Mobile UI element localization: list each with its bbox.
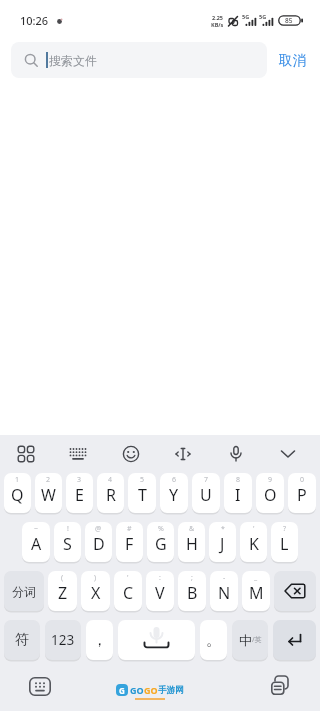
button[interactable]: 5 bbox=[128, 473, 156, 513]
staticText: ' bbox=[253, 524, 255, 534]
staticText: ) bbox=[94, 573, 97, 583]
button[interactable]: * bbox=[209, 522, 236, 562]
staticText: R bbox=[106, 484, 116, 506]
button[interactable] bbox=[274, 571, 316, 611]
staticText: C bbox=[123, 582, 134, 604]
staticText: ! bbox=[67, 524, 69, 534]
button[interactable]: 3 bbox=[66, 473, 93, 513]
staticText: 分词 bbox=[12, 584, 36, 599]
button[interactable] bbox=[277, 443, 299, 465]
button[interactable]: ) bbox=[81, 571, 110, 611]
button[interactable]: : bbox=[146, 571, 174, 611]
staticText: _ bbox=[254, 573, 258, 583]
staticText: KB/s bbox=[211, 21, 224, 28]
staticText: 4 bbox=[108, 475, 113, 485]
staticText: # bbox=[127, 524, 132, 534]
staticText: 1 bbox=[15, 475, 20, 485]
staticText: Z bbox=[58, 582, 68, 604]
button[interactable]: _ bbox=[242, 571, 270, 611]
staticText: B bbox=[187, 582, 198, 604]
button[interactable]: ~ bbox=[22, 522, 50, 562]
staticText: J bbox=[220, 533, 225, 555]
button[interactable]: ? bbox=[271, 522, 298, 562]
button[interactable] bbox=[120, 443, 142, 465]
staticText: Y bbox=[169, 484, 179, 506]
button[interactable] bbox=[268, 674, 292, 698]
staticText: I bbox=[235, 484, 241, 506]
button[interactable]: 0 bbox=[288, 473, 316, 513]
button[interactable]: - bbox=[210, 571, 238, 611]
staticText: ， bbox=[92, 631, 107, 650]
staticText: 0 bbox=[300, 475, 305, 485]
staticText: ( bbox=[61, 573, 64, 583]
button[interactable]: 符 bbox=[4, 620, 40, 660]
staticText: 8 bbox=[236, 475, 241, 485]
staticText: U bbox=[200, 484, 212, 506]
staticText: ~ bbox=[34, 524, 39, 534]
button[interactable] bbox=[67, 443, 89, 465]
button[interactable] bbox=[172, 443, 194, 465]
staticText: E bbox=[75, 484, 84, 506]
button[interactable]: ， bbox=[86, 620, 113, 660]
staticText: ' bbox=[127, 573, 129, 583]
button[interactable]: 。 bbox=[200, 620, 227, 660]
button[interactable]: % bbox=[147, 522, 174, 562]
button[interactable]: ( bbox=[48, 571, 77, 611]
staticText: 5G bbox=[242, 13, 250, 20]
button[interactable]: 中 bbox=[232, 620, 268, 660]
button[interactable]: 2 bbox=[35, 473, 62, 513]
button[interactable] bbox=[118, 620, 195, 660]
staticText: W bbox=[41, 484, 56, 506]
staticText: O bbox=[264, 484, 277, 506]
button[interactable]: @ bbox=[85, 522, 112, 562]
button[interactable]: 7 bbox=[192, 473, 220, 513]
button[interactable]: 9 bbox=[256, 473, 284, 513]
button[interactable]: ' bbox=[114, 571, 142, 611]
staticText: 手游网 bbox=[158, 685, 184, 696]
staticText: & bbox=[189, 524, 195, 534]
staticText: % bbox=[158, 524, 164, 534]
button[interactable]: ! bbox=[54, 522, 81, 562]
staticText: 123 bbox=[51, 631, 75, 649]
staticText: G bbox=[119, 685, 125, 696]
button[interactable]: 1 bbox=[4, 473, 31, 513]
button[interactable]: 分词 bbox=[4, 571, 44, 611]
button[interactable]: 6 bbox=[160, 473, 188, 513]
button[interactable] bbox=[273, 620, 316, 660]
staticText: 5 bbox=[140, 475, 145, 485]
staticText: Q bbox=[11, 484, 24, 506]
staticText: M bbox=[249, 582, 264, 604]
staticText: 搜索文件 bbox=[49, 53, 97, 68]
staticText: /英 bbox=[252, 635, 262, 645]
button[interactable]: 搜索文件 bbox=[11, 42, 267, 78]
staticText: K bbox=[249, 533, 259, 555]
button[interactable]: 123 bbox=[45, 620, 81, 660]
button[interactable] bbox=[15, 443, 37, 465]
button[interactable]: ; bbox=[178, 571, 206, 611]
staticText: D bbox=[93, 533, 105, 555]
button[interactable]: 取消 bbox=[267, 48, 306, 73]
staticText: L bbox=[280, 533, 289, 555]
staticText: 取消 bbox=[279, 52, 306, 69]
button[interactable] bbox=[28, 675, 52, 697]
button[interactable]: ' bbox=[240, 522, 267, 562]
staticText: @ bbox=[95, 524, 102, 534]
staticText: ? bbox=[283, 524, 287, 534]
button[interactable]: 8 bbox=[224, 473, 252, 513]
button[interactable]: 4 bbox=[97, 473, 124, 513]
staticText: A bbox=[31, 533, 42, 555]
staticText: 符 bbox=[15, 631, 29, 649]
staticText: 2.25 bbox=[212, 14, 223, 21]
staticText: 5G bbox=[259, 13, 267, 20]
staticText: 2 bbox=[46, 475, 51, 485]
button[interactable]: & bbox=[178, 522, 205, 562]
button[interactable]: # bbox=[116, 522, 143, 562]
staticText: 10:26 bbox=[20, 13, 49, 28]
staticText: : bbox=[159, 573, 161, 583]
staticText: S bbox=[63, 533, 72, 555]
staticText: 9 bbox=[268, 475, 273, 485]
button[interactable] bbox=[225, 443, 247, 465]
staticText: N bbox=[218, 582, 231, 604]
staticText: 。 bbox=[206, 631, 221, 650]
staticText: - bbox=[223, 573, 226, 583]
